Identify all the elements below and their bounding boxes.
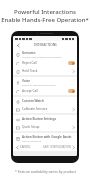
staticText: Reject Call bbox=[22, 61, 37, 65]
button[interactable]: Hold Track bbox=[13, 67, 77, 75]
button[interactable]: Voice bbox=[13, 77, 77, 87]
button[interactable]: Reject Call toggle bbox=[68, 61, 75, 65]
staticText: Custom Watch bbox=[22, 99, 44, 103]
staticText: Accept Call bbox=[22, 89, 38, 93]
button[interactable]: Reject Call bbox=[13, 59, 77, 67]
other: Open Calibrate Sensors bbox=[71, 107, 75, 111]
staticText: Voice bbox=[22, 79, 31, 83]
button[interactable]: Back bbox=[15, 42, 21, 48]
staticText: CANCEL bbox=[20, 145, 31, 149]
staticText: Speak to operate your device bbox=[22, 83, 57, 86]
staticText: Quick Setup bbox=[22, 125, 40, 129]
staticText: Enable Hands-Free Operation* bbox=[1, 16, 89, 24]
button[interactable]: Action Button Settings bbox=[13, 115, 77, 123]
staticText: Calibrate Sensors bbox=[22, 107, 48, 111]
staticText: Action Button Settings bbox=[22, 117, 56, 121]
staticText: Hold Track bbox=[22, 69, 38, 73]
button[interactable]: Gestures bbox=[13, 49, 77, 59]
staticText: Powerful Interactions bbox=[14, 8, 76, 16]
staticText: Action Button with Google Assist bbox=[22, 135, 72, 139]
staticText: Control with simple hand motions bbox=[22, 55, 62, 58]
button[interactable]: Accept Call toggle bbox=[68, 89, 75, 93]
staticText: Tap to configure bbox=[22, 139, 42, 142]
button[interactable]: Action Button with Google Assist bbox=[13, 133, 77, 143]
staticText: * Feature availability varies by product bbox=[15, 169, 76, 174]
other: Open Hold Track bbox=[71, 69, 75, 73]
staticText: SAVE CONFIGURATION bbox=[43, 145, 71, 149]
button[interactable]: CANCEL bbox=[13, 143, 77, 151]
button[interactable]: Calibrate Sensors bbox=[13, 105, 77, 113]
button[interactable]: Custom Watch bbox=[13, 97, 77, 105]
other: Open Quick Setup bbox=[71, 125, 75, 129]
button[interactable]: Accept Call bbox=[13, 87, 77, 95]
staticText: INTERACTIONS bbox=[34, 43, 57, 47]
staticText: Gestures bbox=[22, 51, 36, 55]
button[interactable]: Quick Setup bbox=[13, 123, 77, 131]
